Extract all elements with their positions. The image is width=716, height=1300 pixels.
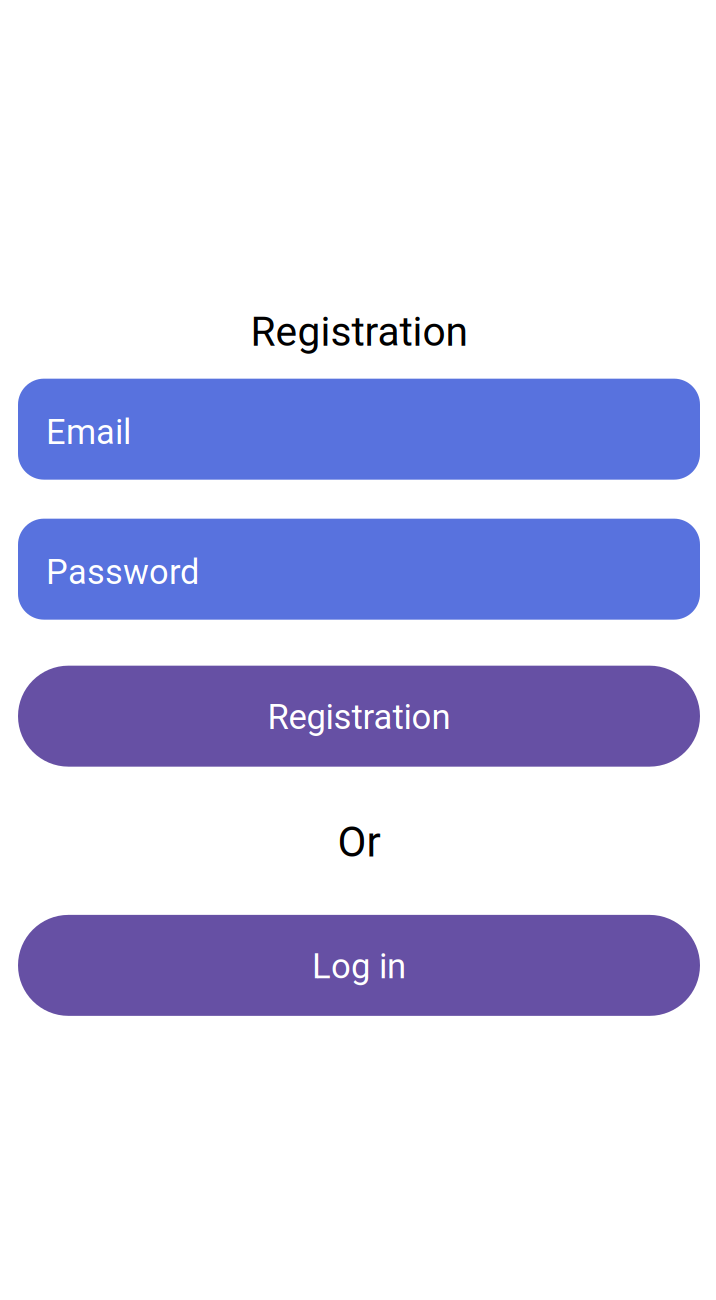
staticText: Registration: [250, 308, 467, 356]
button[interactable]: Log in: [18, 915, 700, 1016]
staticText: Email: [46, 412, 131, 452]
staticText: Or: [337, 818, 380, 867]
staticText: Log in: [312, 946, 406, 987]
button[interactable]: Password: [18, 519, 700, 620]
staticText: Password: [46, 552, 199, 592]
staticText: Registration: [267, 697, 450, 737]
button[interactable]: Registration: [18, 666, 700, 767]
button[interactable]: Email: [18, 379, 700, 480]
